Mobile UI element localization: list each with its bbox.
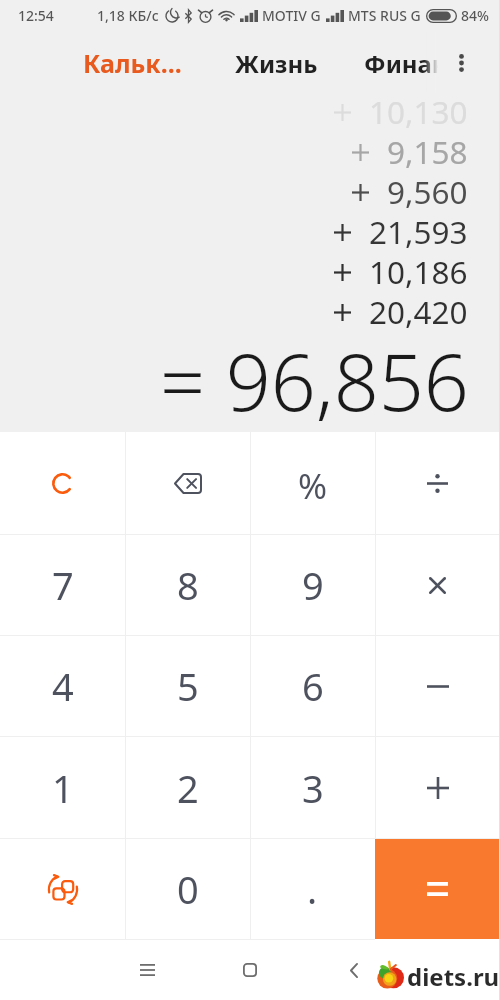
staticText: % (298, 462, 328, 510)
staticText: 7 (52, 559, 74, 611)
staticText: 1 (52, 762, 74, 814)
staticText: 8 (177, 559, 199, 611)
staticText: 1,18 КБ/c (97, 6, 159, 25)
staticText: 10,130 (369, 90, 468, 130)
staticText: . (307, 863, 318, 915)
button[interactable]: 6 (250, 636, 375, 736)
staticText: 9,158 (387, 130, 468, 170)
button[interactable]: . (250, 839, 375, 939)
button[interactable]: Жизнь (212, 32, 340, 94)
staticText: 3 (302, 762, 324, 814)
button[interactable]: 9 (250, 535, 375, 635)
staticText: Финансы (364, 47, 459, 80)
staticText: MOTIV G (262, 6, 321, 25)
staticText: 10,186 (369, 250, 468, 290)
button[interactable]: Clear (0, 432, 125, 534)
staticText: 5 (177, 660, 199, 712)
staticText: 20,420 (369, 290, 468, 330)
button[interactable]: % (250, 432, 375, 534)
button[interactable]: Recents (124, 947, 170, 993)
staticText: 0 (177, 863, 199, 915)
staticText: 6 (302, 660, 324, 712)
button[interactable]: Кальк... (0, 32, 265, 94)
button[interactable]: More options (450, 30, 500, 92)
staticText: 9,560 (387, 170, 468, 210)
button[interactable]: Minus (375, 636, 500, 736)
staticText: Жизнь (235, 47, 318, 80)
staticText: 9 (302, 559, 324, 611)
button[interactable]: Backspace (125, 432, 250, 534)
staticText: 84% (461, 6, 489, 25)
button[interactable]: 2 (125, 737, 250, 838)
staticText: MTS RUS G (348, 6, 421, 25)
button[interactable]: 7 (0, 535, 125, 635)
button[interactable]: Plus (375, 737, 500, 838)
staticText: 21,593 (369, 210, 468, 250)
staticText: 2 (177, 762, 199, 814)
staticText: diets.ru (407, 960, 500, 993)
button[interactable]: Multiply (375, 535, 500, 635)
button[interactable]: Home (227, 947, 273, 993)
staticText: 12:54 (18, 6, 54, 25)
staticText: 4 (52, 660, 74, 712)
button[interactable]: Equals (375, 839, 500, 939)
button[interactable]: 0 (125, 839, 250, 939)
button[interactable]: Converter (0, 839, 125, 939)
button[interactable]: Divide (375, 432, 500, 534)
button[interactable]: 8 (125, 535, 250, 635)
button[interactable]: Back (331, 947, 377, 993)
staticText: Кальк... (83, 46, 182, 80)
button[interactable]: 4 (0, 636, 125, 736)
button[interactable]: Финансы (364, 32, 459, 94)
button[interactable]: 3 (250, 737, 375, 838)
staticText: = 96,856 (160, 327, 469, 435)
button[interactable]: 5 (125, 636, 250, 736)
button[interactable]: 1 (0, 737, 125, 838)
